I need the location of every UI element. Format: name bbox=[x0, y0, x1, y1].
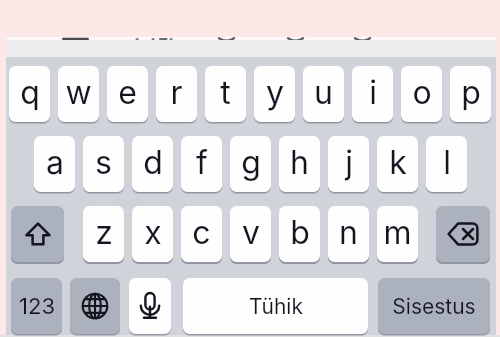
staticText: k bbox=[389, 143, 407, 182]
staticText: q bbox=[20, 73, 40, 112]
button[interactable]: Tühik bbox=[183, 278, 368, 334]
button[interactable]: Backspace bbox=[436, 206, 490, 262]
staticText: Sisestus bbox=[392, 294, 476, 319]
staticText: z bbox=[95, 213, 113, 252]
button[interactable]: q bbox=[9, 66, 50, 122]
staticText: d bbox=[143, 143, 163, 182]
staticText: o bbox=[412, 73, 432, 112]
staticText: i bbox=[369, 73, 377, 112]
button[interactable]: d bbox=[132, 136, 173, 192]
staticText: v bbox=[242, 213, 260, 252]
staticText: 123 bbox=[19, 293, 55, 320]
staticText: n bbox=[339, 213, 358, 252]
button[interactable]: s bbox=[83, 136, 124, 192]
button[interactable]: k bbox=[377, 136, 418, 192]
button[interactable]: h bbox=[279, 136, 320, 192]
staticText: Tühik bbox=[249, 294, 303, 319]
button[interactable]: u bbox=[303, 66, 344, 122]
button[interactable]: f bbox=[181, 136, 222, 192]
staticText: f bbox=[196, 143, 208, 182]
button[interactable]: n bbox=[328, 206, 369, 262]
button[interactable]: y bbox=[254, 66, 295, 122]
staticText: h bbox=[290, 143, 309, 182]
staticText: e bbox=[118, 73, 137, 112]
staticText: b bbox=[290, 213, 310, 252]
staticText: w bbox=[65, 73, 92, 112]
button[interactable]: g bbox=[230, 136, 271, 192]
button[interactable]: Next keyboard bbox=[70, 278, 120, 334]
button[interactable]: r bbox=[156, 66, 197, 122]
staticText: a bbox=[46, 143, 64, 182]
staticText: c bbox=[192, 213, 211, 252]
button[interactable]: l bbox=[426, 136, 467, 192]
button[interactable]: Dictate bbox=[129, 278, 171, 334]
button[interactable]: b bbox=[279, 206, 320, 262]
staticText: t bbox=[220, 73, 231, 112]
button[interactable]: Sisestus bbox=[378, 278, 490, 334]
staticText: x bbox=[144, 213, 162, 252]
button[interactable]: m bbox=[377, 206, 418, 262]
button[interactable]: a bbox=[34, 136, 75, 192]
button[interactable]: Shift bbox=[11, 206, 64, 262]
button[interactable]: v bbox=[230, 206, 271, 262]
button[interactable]: e bbox=[107, 66, 148, 122]
staticText: m bbox=[383, 213, 412, 252]
staticText: g bbox=[241, 143, 261, 182]
button[interactable]: j bbox=[328, 136, 369, 192]
staticText: y bbox=[266, 73, 284, 112]
staticText: u bbox=[314, 73, 333, 112]
button[interactable]: c bbox=[181, 206, 222, 262]
staticText: s bbox=[95, 143, 112, 182]
staticText: p bbox=[461, 73, 481, 112]
button[interactable]: t bbox=[205, 66, 246, 122]
button[interactable]: p bbox=[450, 66, 491, 122]
button[interactable]: z bbox=[83, 206, 124, 262]
button[interactable]: o bbox=[401, 66, 442, 122]
button[interactable]: w bbox=[58, 66, 99, 122]
button[interactable]: 123 bbox=[11, 278, 62, 334]
staticText: r bbox=[170, 73, 183, 112]
button[interactable]: i bbox=[352, 66, 393, 122]
button[interactable]: x bbox=[132, 206, 173, 262]
staticText: l bbox=[443, 143, 451, 182]
staticText: j bbox=[345, 143, 353, 182]
